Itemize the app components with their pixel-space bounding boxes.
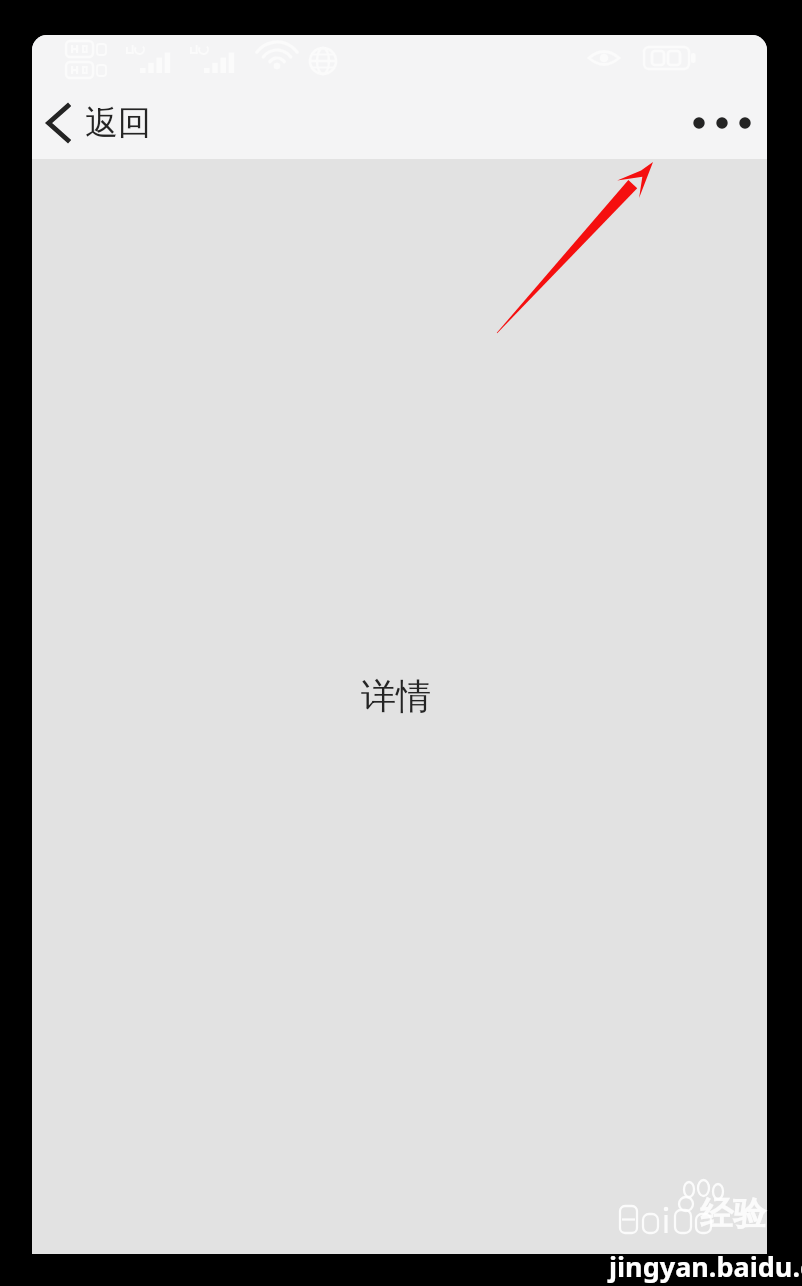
staticText: jingyan.baidu.com xyxy=(609,1248,802,1285)
button[interactable]: More options xyxy=(677,86,767,159)
staticText: 经验 xyxy=(700,1193,766,1235)
staticText: 详情 xyxy=(361,674,431,718)
button[interactable]: 返回 xyxy=(34,86,194,159)
staticText: 返回 xyxy=(85,102,151,144)
